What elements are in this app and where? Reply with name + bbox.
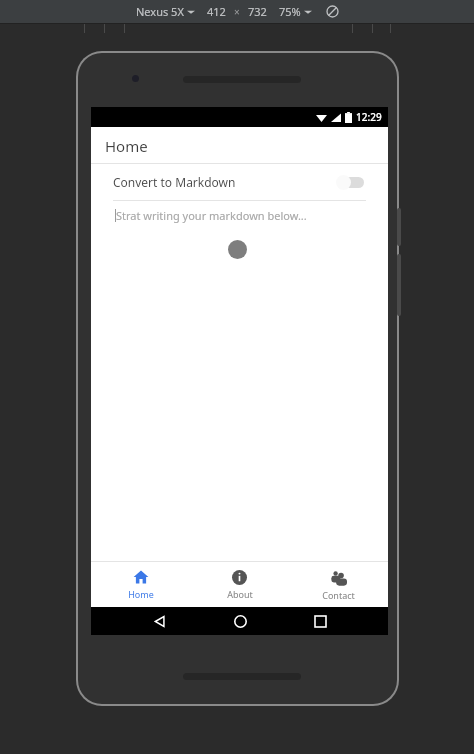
button[interactable]: Contact — [289, 562, 388, 607]
staticText: Home — [128, 588, 154, 600]
staticText: Contact — [322, 589, 355, 601]
button[interactable]: Back — [146, 608, 172, 634]
staticText: About — [227, 588, 253, 600]
button[interactable]: About — [190, 562, 289, 607]
staticText: Strat writing your markdown below... — [116, 208, 307, 223]
button[interactable]: Home — [91, 562, 190, 607]
staticText: Home — [105, 136, 148, 156]
staticText: 412 — [207, 4, 226, 19]
button[interactable]: Recent apps — [307, 608, 333, 634]
staticText: 732 — [248, 4, 267, 19]
staticText: 75% — [279, 4, 301, 19]
button[interactable]: Convert to Markdown — [91, 164, 388, 200]
button[interactable]: Home — [227, 608, 253, 634]
staticText: 12:29 — [356, 110, 382, 124]
staticText: × — [234, 5, 240, 19]
staticText: Convert to Markdown — [113, 174, 236, 190]
staticText: Nexus 5X — [136, 4, 184, 19]
button[interactable]: Strat writing your markdown below... — [91, 201, 388, 229]
other: No preview — [326, 5, 339, 18]
